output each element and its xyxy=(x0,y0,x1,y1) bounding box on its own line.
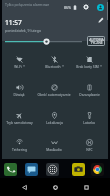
button[interactable]: Phone xyxy=(4,163,17,176)
staticText: Obróć automatycznie xyxy=(37,92,71,96)
staticText: Brak karty SIM xyxy=(76,64,99,68)
staticText: Tryb samolotowy xyxy=(6,120,33,124)
staticText: NFC xyxy=(86,147,93,151)
staticText: AUTOMA TYCZNE xyxy=(89,37,104,45)
button[interactable]: Wi-Fi xyxy=(2,50,36,72)
button[interactable]: Tethering xyxy=(2,133,36,155)
button[interactable]: Messages xyxy=(25,163,38,176)
staticText: Wi-Fi xyxy=(14,64,22,68)
button[interactable]: All apps xyxy=(46,163,59,176)
button[interactable]: Chrome xyxy=(91,163,104,176)
button[interactable]: Recent apps xyxy=(79,180,93,194)
button[interactable]: Settings xyxy=(82,3,90,11)
button[interactable]: Obróć automatycznie xyxy=(37,78,71,100)
staticText: Dźwięk xyxy=(13,92,25,96)
button[interactable]: MaxAudio xyxy=(37,133,71,155)
staticText: Latarka xyxy=(83,120,95,124)
button[interactable]: Home xyxy=(48,180,62,194)
button[interactable]: User account xyxy=(97,4,104,11)
staticText: poniedziałek, 9 lutego xyxy=(5,28,42,33)
button[interactable]: AUTOMA TYCZNE xyxy=(87,36,105,46)
button[interactable]: Back xyxy=(17,180,31,194)
staticText: 86% xyxy=(64,5,72,10)
button[interactable]: NFC xyxy=(72,133,106,155)
staticText: Oszczędzanie xyxy=(79,92,100,96)
button[interactable]: Edit quick settings xyxy=(96,15,106,25)
button[interactable]: Oszczędzanie xyxy=(72,78,106,100)
button[interactable]: Lokalizacja xyxy=(37,106,71,128)
staticText: Tylko połączenia alarmowe xyxy=(5,2,50,7)
staticText: MaxAudio xyxy=(46,147,62,151)
staticText: Tethering xyxy=(12,147,27,151)
staticText: 11:57 xyxy=(5,18,22,27)
button[interactable]: Latarka xyxy=(72,106,106,128)
button[interactable]: Brak karty SIM xyxy=(72,50,106,72)
button[interactable]: Camera xyxy=(72,163,85,176)
staticText: Bluetooth xyxy=(45,64,61,68)
staticText: Lokalizacja xyxy=(46,120,63,124)
button[interactable]: Dźwięk xyxy=(2,78,36,100)
button[interactable]: Tryb samolotowy xyxy=(2,106,36,128)
button[interactable]: Bluetooth xyxy=(37,50,71,72)
button[interactable]: Brightness slider xyxy=(4,36,82,47)
